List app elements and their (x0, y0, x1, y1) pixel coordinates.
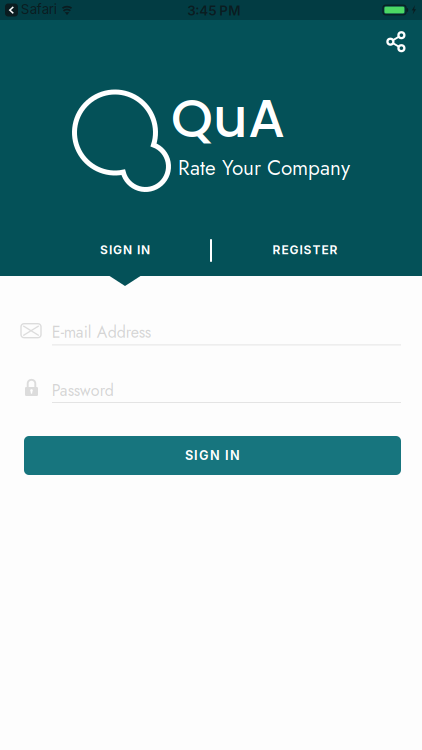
button[interactable]: Share (373, 18, 417, 62)
button[interactable]: S I G N I N (50, 228, 200, 272)
button[interactable]: Password (0, 376, 400, 410)
staticText: Rate Your Company (178, 153, 350, 183)
staticText: Password (52, 379, 114, 402)
staticText: Safari (21, 1, 57, 17)
staticText: R E G I S T E R (272, 243, 337, 257)
button[interactable]: R E G I S T E R (230, 228, 380, 272)
staticText: QuA (171, 81, 285, 156)
staticText: E-mail Address (52, 321, 151, 344)
button[interactable]: E-mail Address (0, 321, 400, 355)
staticText: S I G N I N (185, 448, 240, 463)
staticText: S I G N I N (100, 243, 150, 257)
button[interactable]: S I G N I N (24, 436, 401, 475)
staticText: 3:45 PM (187, 3, 240, 19)
